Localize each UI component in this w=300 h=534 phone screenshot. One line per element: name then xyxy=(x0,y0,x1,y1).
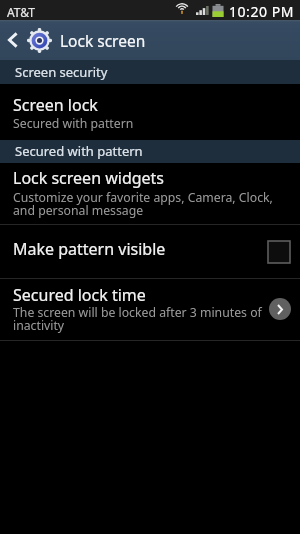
staticText: Secured lock time xyxy=(13,284,146,306)
button[interactable]: Secured lock time xyxy=(0,279,300,340)
staticText: Make pattern visible xyxy=(13,238,166,260)
button[interactable]: Secured lock time options xyxy=(269,298,291,320)
staticText: Lock screen xyxy=(60,30,146,51)
button[interactable]: Navigate up xyxy=(0,20,26,60)
staticText: Screen security xyxy=(15,63,108,81)
button[interactable]: Lock screen widgets xyxy=(0,163,300,224)
staticText: AT&T xyxy=(7,4,35,20)
button[interactable]: Screen lock xyxy=(0,84,300,140)
staticText: Secured with pattern xyxy=(13,115,134,132)
staticText: Customize your favorite apps, Camera, Cl… xyxy=(13,189,273,219)
staticText: The screen will be locked after 3 minute… xyxy=(13,304,262,334)
staticText: Lock screen widgets xyxy=(13,167,165,189)
staticText: 10:20 PM xyxy=(229,2,294,21)
button[interactable]: Make pattern visible xyxy=(0,225,300,278)
staticText: Secured with pattern xyxy=(15,142,143,160)
staticText: Screen lock xyxy=(13,94,98,116)
